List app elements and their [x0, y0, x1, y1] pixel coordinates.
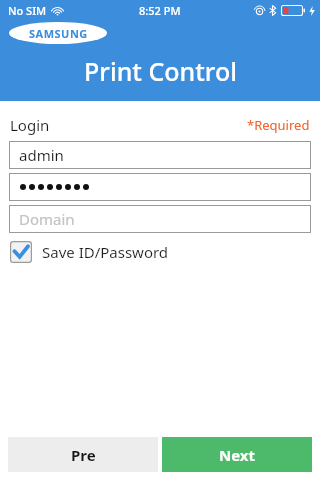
button[interactable]: Save ID/Password checkbox	[10, 241, 169, 263]
button[interactable]: Next	[162, 437, 312, 472]
button[interactable]: Domain	[9, 205, 311, 233]
staticText: admin	[19, 145, 64, 165]
other: Save ID/Password checkbox	[10, 241, 32, 263]
staticText: Save ID/Password	[42, 242, 169, 262]
staticText: Login	[10, 115, 50, 135]
button[interactable]: admin	[9, 141, 311, 169]
staticText: Next	[219, 445, 256, 465]
staticText: 8:52 PM	[139, 3, 181, 18]
button[interactable]	[9, 173, 311, 201]
staticText: Pre	[71, 445, 96, 465]
staticText: *Required	[247, 116, 310, 134]
staticText: No SIM	[8, 3, 47, 18]
staticText: SAMSUNG	[29, 26, 88, 41]
button[interactable]: Pre	[8, 437, 158, 472]
staticText: Print Control	[84, 54, 237, 88]
staticText: Domain	[19, 209, 75, 229]
